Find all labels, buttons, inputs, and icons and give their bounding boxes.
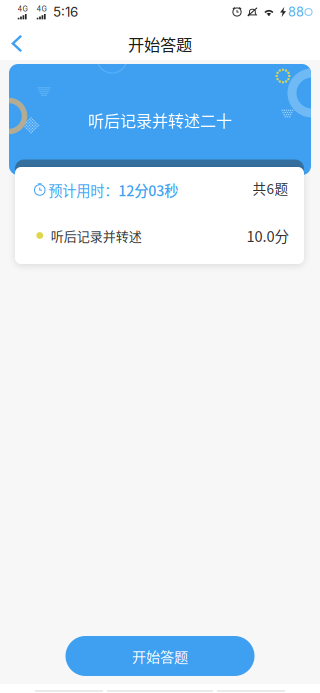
button[interactable]: 返回: [0, 24, 35, 60]
button[interactable]: 开始答题: [65, 636, 254, 676]
staticText: 88: [288, 4, 304, 20]
staticText: 预计用时：: [48, 180, 118, 200]
staticText: 10.0分: [246, 225, 289, 246]
staticText: 听后记录并转述: [51, 226, 142, 245]
staticText: 4G: [17, 5, 27, 13]
staticText: 开始答题: [132, 646, 188, 666]
staticText: 12分03秒: [118, 180, 178, 200]
staticText: 4G: [36, 5, 46, 13]
staticText: 听后记录并转述二十: [88, 108, 232, 132]
staticText: 5:16: [53, 4, 78, 20]
staticText: 开始答题: [128, 32, 192, 56]
staticText: 共6题: [252, 178, 288, 198]
